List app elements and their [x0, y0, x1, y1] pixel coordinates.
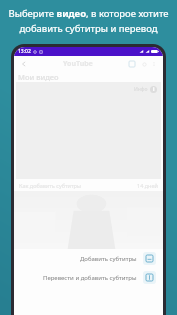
staticText: Мои видео	[18, 72, 59, 82]
button[interactable]: Назад	[19, 59, 29, 69]
button[interactable]: Добавить субтитры	[14, 249, 163, 268]
staticText: Перевести и добавить субтитры	[43, 274, 137, 282]
button[interactable]: Трансляция	[127, 59, 137, 69]
button[interactable]: Информация	[150, 86, 157, 93]
staticText: Инфо	[134, 86, 148, 93]
staticText: добавить субтитры и перевод	[6, 22, 171, 35]
staticText: Выберите видео, в которое хотите	[6, 7, 171, 20]
staticText: Как добавить субтитры	[19, 182, 82, 189]
button[interactable]	[14, 191, 163, 249]
staticText: i	[153, 86, 155, 93]
button[interactable]: Поиск	[140, 60, 148, 68]
staticText: YouTube	[63, 59, 93, 69]
button[interactable]: Перевести и добавить субтитры	[14, 268, 163, 287]
staticText: Добавить субтитры	[80, 255, 137, 263]
staticText: 13:02	[18, 48, 31, 55]
staticText: 14 дней	[137, 182, 158, 189]
